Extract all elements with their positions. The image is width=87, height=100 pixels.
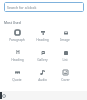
- button[interactable]: Gallery: [31, 48, 53, 61]
- staticText: Cover: [61, 78, 70, 82]
- button[interactable]: List: [54, 48, 76, 61]
- staticText: Most Used: [4, 20, 21, 24]
- staticText: List: [62, 58, 68, 62]
- button[interactable]: Add block: [2, 94, 6, 98]
- staticText: Heading: [11, 58, 24, 62]
- button[interactable]: Search for a block: [4, 2, 84, 12]
- staticText: Heading: [36, 38, 49, 42]
- staticText: Audio: [38, 78, 47, 82]
- button[interactable]: Audio: [31, 68, 53, 81]
- staticText: Quote: [12, 78, 22, 82]
- button[interactable]: Image: [54, 28, 76, 41]
- button[interactable]: Paragraph: [6, 28, 28, 41]
- staticText: Search for a block: [7, 5, 37, 10]
- button[interactable]: H: [6, 48, 28, 61]
- staticText: H: [16, 49, 20, 56]
- staticText: Gallery: [37, 58, 48, 62]
- button[interactable]: Quote: [6, 68, 28, 81]
- staticText: Paragraph: [9, 38, 25, 42]
- staticText: Image: [60, 38, 70, 42]
- button[interactable]: Heading: [31, 28, 53, 41]
- button[interactable]: Cover: [54, 68, 76, 81]
